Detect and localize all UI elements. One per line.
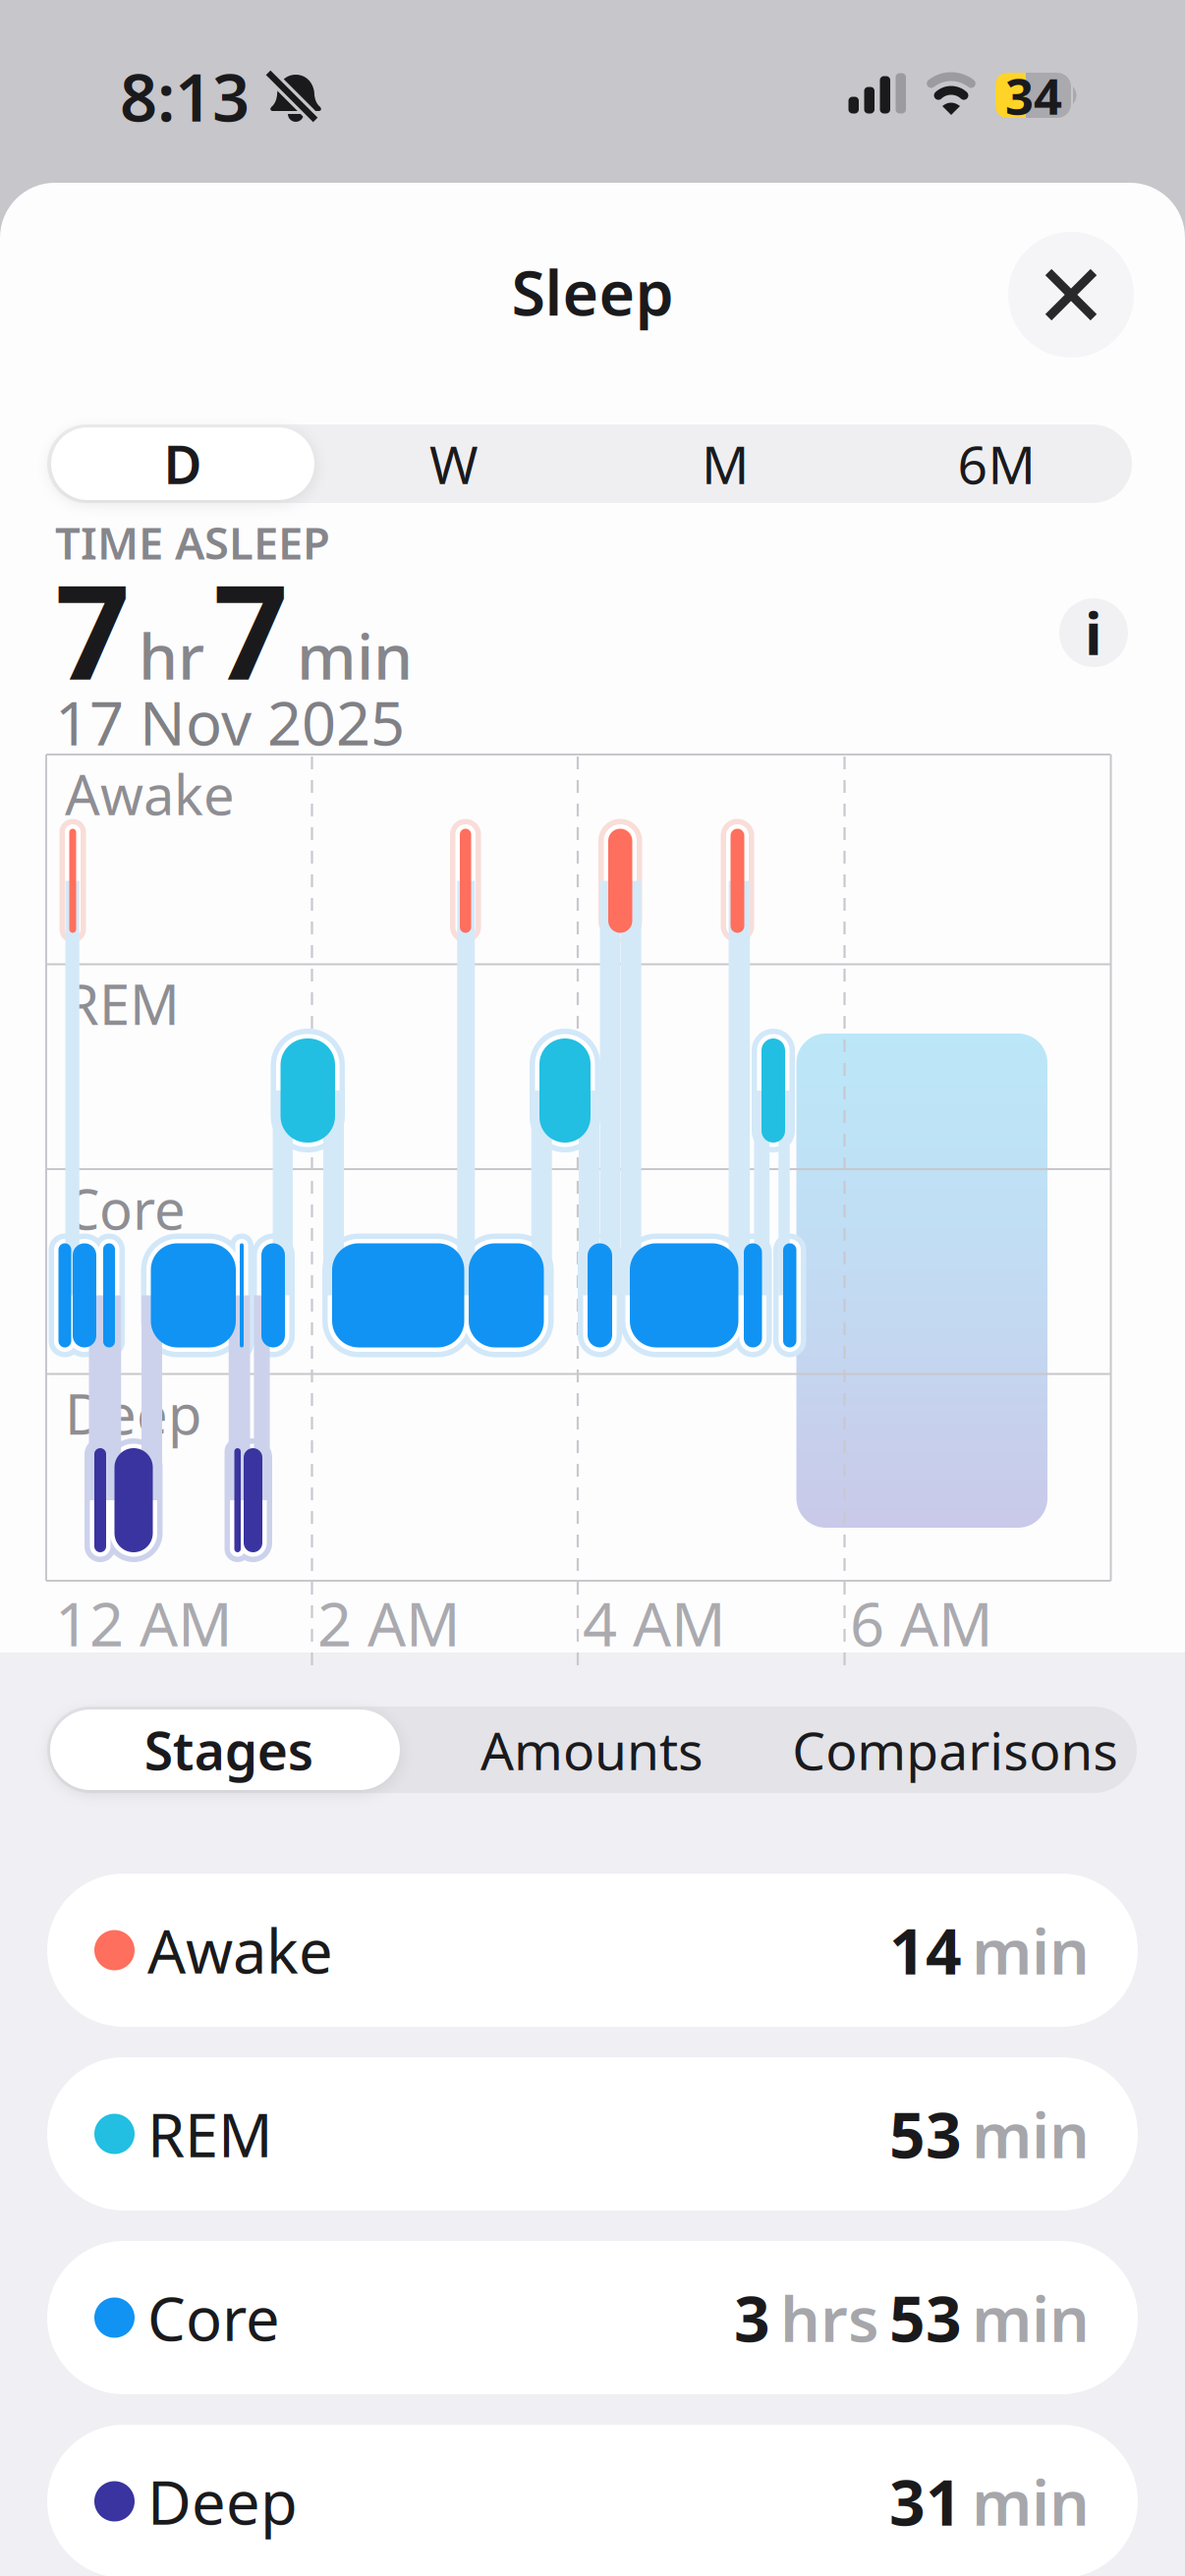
button[interactable]: Close <box>1008 232 1134 358</box>
staticText: 7 <box>213 542 288 716</box>
button[interactable]: 6M <box>861 424 1132 503</box>
staticText: 4 AM <box>583 1583 726 1663</box>
staticText: 2 AM <box>317 1583 461 1663</box>
button[interactable]: Amounts <box>410 1707 774 1793</box>
staticText: 6M <box>958 429 1035 498</box>
staticText: Deep <box>65 1377 201 1450</box>
staticText: 8:13 <box>120 53 250 140</box>
staticText: Comparisons <box>792 1715 1118 1785</box>
staticText: hrs <box>780 2276 879 2359</box>
staticText: W <box>429 429 479 498</box>
staticText: Core <box>65 1172 186 1245</box>
staticText: Stages <box>144 1715 313 1785</box>
staticText: 31 <box>889 2460 962 2543</box>
staticText: 7 <box>55 542 130 716</box>
staticText: Sleep <box>511 251 674 333</box>
staticText: Deep <box>147 2461 298 2541</box>
staticText: hr <box>139 613 204 697</box>
staticText: TIME ASLEEP <box>55 513 330 572</box>
staticText: min <box>297 613 413 697</box>
staticText: 14 <box>889 1908 962 1992</box>
staticText: M <box>702 429 749 498</box>
button[interactable]: W <box>318 424 590 503</box>
staticText: 53 <box>889 2276 962 2359</box>
staticText: min <box>972 2460 1090 2543</box>
button[interactable]: More information <box>1059 594 1128 671</box>
staticText: 17 Nov 2025 <box>55 682 405 762</box>
button[interactable]: Comparisons <box>774 1707 1137 1793</box>
staticText: 34 <box>1005 62 1062 128</box>
staticText: Awake <box>65 757 235 830</box>
staticText: Amounts <box>480 1715 704 1785</box>
staticText: Awake <box>147 1910 333 1990</box>
staticText: 3 <box>734 2276 770 2359</box>
staticText: i <box>1085 594 1102 671</box>
staticText: REM <box>147 2094 273 2174</box>
staticText: D <box>164 429 202 498</box>
button[interactable]: Stages <box>47 1707 410 1793</box>
staticText: 6 AM <box>850 1583 993 1663</box>
staticText: min <box>972 2276 1090 2359</box>
button[interactable]: M <box>590 424 861 503</box>
staticText: min <box>972 1908 1090 1992</box>
button[interactable]: D <box>47 424 318 503</box>
staticText: Core <box>147 2278 280 2358</box>
staticText: 53 <box>889 2092 962 2176</box>
staticText: 12 AM <box>55 1583 233 1663</box>
staticText: REM <box>65 967 180 1040</box>
staticText: min <box>972 2092 1090 2176</box>
